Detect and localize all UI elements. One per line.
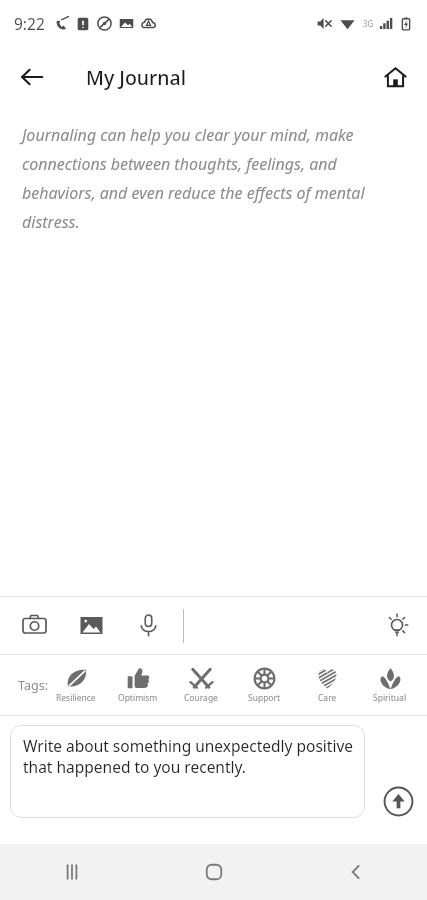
- staticText: Journaling can help you clear your mind,…: [22, 124, 407, 232]
- button[interactable]: Send entry: [381, 784, 415, 818]
- button[interactable]: Back: [285, 844, 427, 900]
- button[interactable]: Take photo: [6, 597, 63, 654]
- button[interactable]: Back: [10, 55, 54, 99]
- button[interactable]: Optimism: [113, 667, 163, 704]
- button[interactable]: Resilience: [51, 667, 101, 704]
- button[interactable]: Care: [302, 667, 352, 704]
- button[interactable]: Write about something unexpectedly posit…: [10, 725, 365, 818]
- staticText: 9:22: [14, 13, 45, 34]
- staticText: Courage: [184, 692, 218, 704]
- button[interactable]: Spiritual: [365, 667, 415, 704]
- button[interactable]: Home: [143, 844, 285, 900]
- button[interactable]: Support: [239, 667, 289, 704]
- button[interactable]: Recents: [0, 844, 143, 900]
- staticText: Support: [248, 692, 281, 704]
- staticText: My Journal: [86, 64, 186, 91]
- staticText: Write about something unexpectedly posit…: [23, 735, 357, 778]
- staticText: Care: [318, 692, 337, 704]
- button[interactable]: Home: [373, 55, 417, 99]
- staticText: Resilience: [56, 692, 96, 704]
- staticText: 3G: [363, 18, 374, 29]
- button[interactable]: Courage: [176, 667, 226, 704]
- button[interactable]: Add image: [63, 597, 120, 654]
- button[interactable]: Record audio: [120, 597, 177, 654]
- staticText: Tags:: [18, 677, 48, 694]
- staticText: Spiritual: [373, 692, 407, 704]
- staticText: Optimism: [118, 692, 158, 704]
- button[interactable]: Prompt ideas: [375, 604, 419, 648]
